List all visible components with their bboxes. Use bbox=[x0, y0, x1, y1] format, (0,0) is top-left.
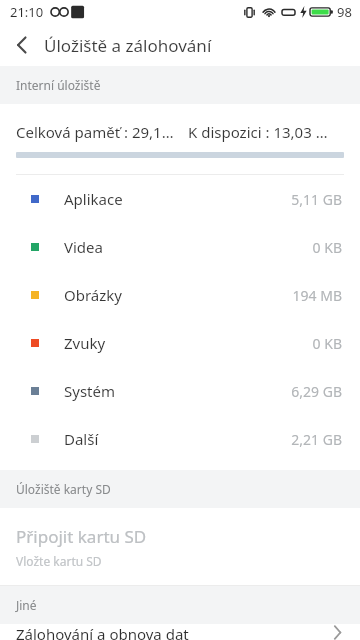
staticText: 98 bbox=[337, 3, 352, 21]
staticText: 0 KB bbox=[312, 238, 342, 257]
staticText: 21:10 bbox=[10, 3, 44, 21]
button[interactable]: Aplikace bbox=[0, 175, 360, 223]
staticText: Systém bbox=[64, 381, 115, 401]
button[interactable]: Zálohování a obnova dat bbox=[0, 624, 360, 640]
staticText: 0 KB bbox=[312, 334, 342, 353]
button[interactable]: Obrázky bbox=[0, 271, 360, 319]
staticText: 194 MB bbox=[292, 286, 342, 305]
staticText: 2,21 GB bbox=[291, 430, 342, 449]
button[interactable]: Další bbox=[0, 415, 360, 463]
staticText: Interní úložiště bbox=[16, 77, 101, 93]
staticText: Vložte kartu SD bbox=[16, 553, 102, 569]
staticText: Úložiště karty SD bbox=[16, 481, 111, 497]
staticText: Další bbox=[64, 429, 99, 449]
staticText: Celková paměť : 29,1… bbox=[16, 122, 174, 142]
staticText: 5,11 GB bbox=[291, 190, 342, 209]
staticText: Obrázky bbox=[64, 285, 122, 305]
staticText: Připojit kartu SD bbox=[16, 525, 147, 548]
button[interactable]: Back bbox=[0, 24, 44, 66]
button[interactable]: Systém bbox=[0, 367, 360, 415]
staticText: Zvuky bbox=[64, 333, 106, 353]
staticText: K dispozici : 13,03 … bbox=[188, 122, 328, 142]
staticText: Videa bbox=[64, 237, 103, 257]
staticText: Jiné bbox=[16, 597, 37, 613]
staticText: 6,29 GB bbox=[291, 382, 342, 401]
staticText: Zálohování a obnova dat bbox=[16, 624, 189, 640]
staticText: Aplikace bbox=[64, 189, 123, 209]
button[interactable]: Zvuky bbox=[0, 319, 360, 367]
staticText: Úložiště a zálohování bbox=[44, 34, 212, 57]
button[interactable]: Videa bbox=[0, 223, 360, 271]
button[interactable]: Připojit kartu SD bbox=[0, 508, 360, 585]
